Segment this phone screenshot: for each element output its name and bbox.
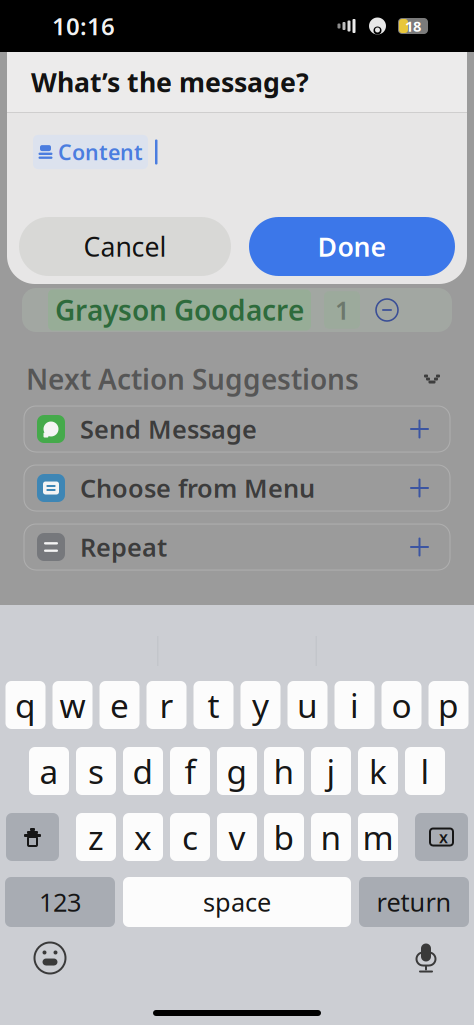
button[interactable]: b xyxy=(264,813,304,861)
staticText: t xyxy=(207,683,219,727)
staticText: Cancel xyxy=(83,229,166,264)
button[interactable]: c xyxy=(170,813,210,861)
staticText: space xyxy=(203,885,271,919)
button[interactable]: a xyxy=(29,747,69,795)
staticText: n xyxy=(320,815,341,859)
staticText: y xyxy=(252,683,269,727)
button[interactable]: m xyxy=(358,813,398,861)
staticText: a xyxy=(39,749,58,793)
button[interactable]: Dictate xyxy=(404,936,448,980)
staticText: r xyxy=(159,683,173,727)
staticText: Choose from Menu xyxy=(80,471,315,505)
button[interactable]: y xyxy=(240,681,280,729)
button[interactable]: z xyxy=(76,813,116,861)
staticText: return xyxy=(376,885,451,919)
button[interactable]: i xyxy=(334,681,374,729)
button[interactable]: j xyxy=(311,747,351,795)
button[interactable]: h xyxy=(264,747,304,795)
button[interactable]: q xyxy=(5,681,45,729)
button[interactable]: 123 xyxy=(5,877,115,927)
button[interactable]: f xyxy=(170,747,210,795)
staticText: i xyxy=(350,683,359,727)
button[interactable]: d xyxy=(123,747,163,795)
staticText: v xyxy=(228,815,245,859)
button[interactable]: Done xyxy=(249,217,455,276)
staticText: j xyxy=(326,749,335,793)
staticText: p xyxy=(438,683,459,727)
staticText: g xyxy=(226,749,247,793)
button[interactable]: Cancel xyxy=(19,217,231,276)
staticText: Content xyxy=(58,138,143,166)
staticText: x xyxy=(439,826,448,848)
button[interactable]: Repeat xyxy=(24,524,450,570)
staticText: h xyxy=(273,749,294,793)
staticText: z xyxy=(88,815,104,859)
staticText: m xyxy=(362,815,393,859)
button[interactable]: s xyxy=(76,747,116,795)
button[interactable]: Shift xyxy=(6,813,59,861)
button[interactable]: Emoji keyboard xyxy=(28,936,72,980)
button[interactable]: k xyxy=(358,747,398,795)
button[interactable]: space xyxy=(123,877,351,927)
staticText: Repeat xyxy=(80,530,167,564)
staticText: 123 xyxy=(39,885,81,919)
staticText: Done xyxy=(317,229,386,264)
button[interactable]: Delete xyxy=(415,813,468,861)
staticText: l xyxy=(420,749,429,793)
staticText: o xyxy=(391,683,411,727)
staticText: f xyxy=(184,749,195,793)
staticText: b xyxy=(273,815,294,859)
staticText: s xyxy=(88,749,104,793)
staticText: k xyxy=(369,749,387,793)
staticText: What’s the message? xyxy=(31,64,309,100)
button[interactable]: r xyxy=(146,681,186,729)
button[interactable]: Send Message xyxy=(24,406,450,452)
staticText: x xyxy=(134,815,152,859)
button[interactable]: l xyxy=(405,747,445,795)
button[interactable]: x xyxy=(123,813,163,861)
staticText: Send Message xyxy=(80,412,257,446)
button[interactable]: v xyxy=(217,813,257,861)
button[interactable]: Choose from Menu xyxy=(24,465,450,511)
staticText: d xyxy=(132,749,153,793)
staticText: u xyxy=(297,683,318,727)
staticText: Next Action Suggestions xyxy=(26,360,359,398)
button[interactable]: n xyxy=(311,813,351,861)
button[interactable]: e xyxy=(99,681,139,729)
staticText: w xyxy=(59,683,85,727)
button[interactable]: return xyxy=(359,877,469,927)
button[interactable]: o xyxy=(381,681,421,729)
staticText: e xyxy=(110,683,129,727)
button[interactable]: p xyxy=(428,681,468,729)
button[interactable]: u xyxy=(287,681,327,729)
staticText: c xyxy=(182,815,198,859)
staticText: Grayson Goodacre xyxy=(55,291,304,329)
staticText: q xyxy=(15,683,36,727)
staticText: 18 xyxy=(405,16,421,36)
button[interactable]: Collapse Next Action Suggestions xyxy=(414,361,450,397)
staticText: 10:16 xyxy=(52,10,115,42)
button[interactable]: t xyxy=(193,681,233,729)
button[interactable]: w xyxy=(52,681,92,729)
button[interactable]: g xyxy=(217,747,257,795)
staticText: 1 xyxy=(335,293,349,327)
